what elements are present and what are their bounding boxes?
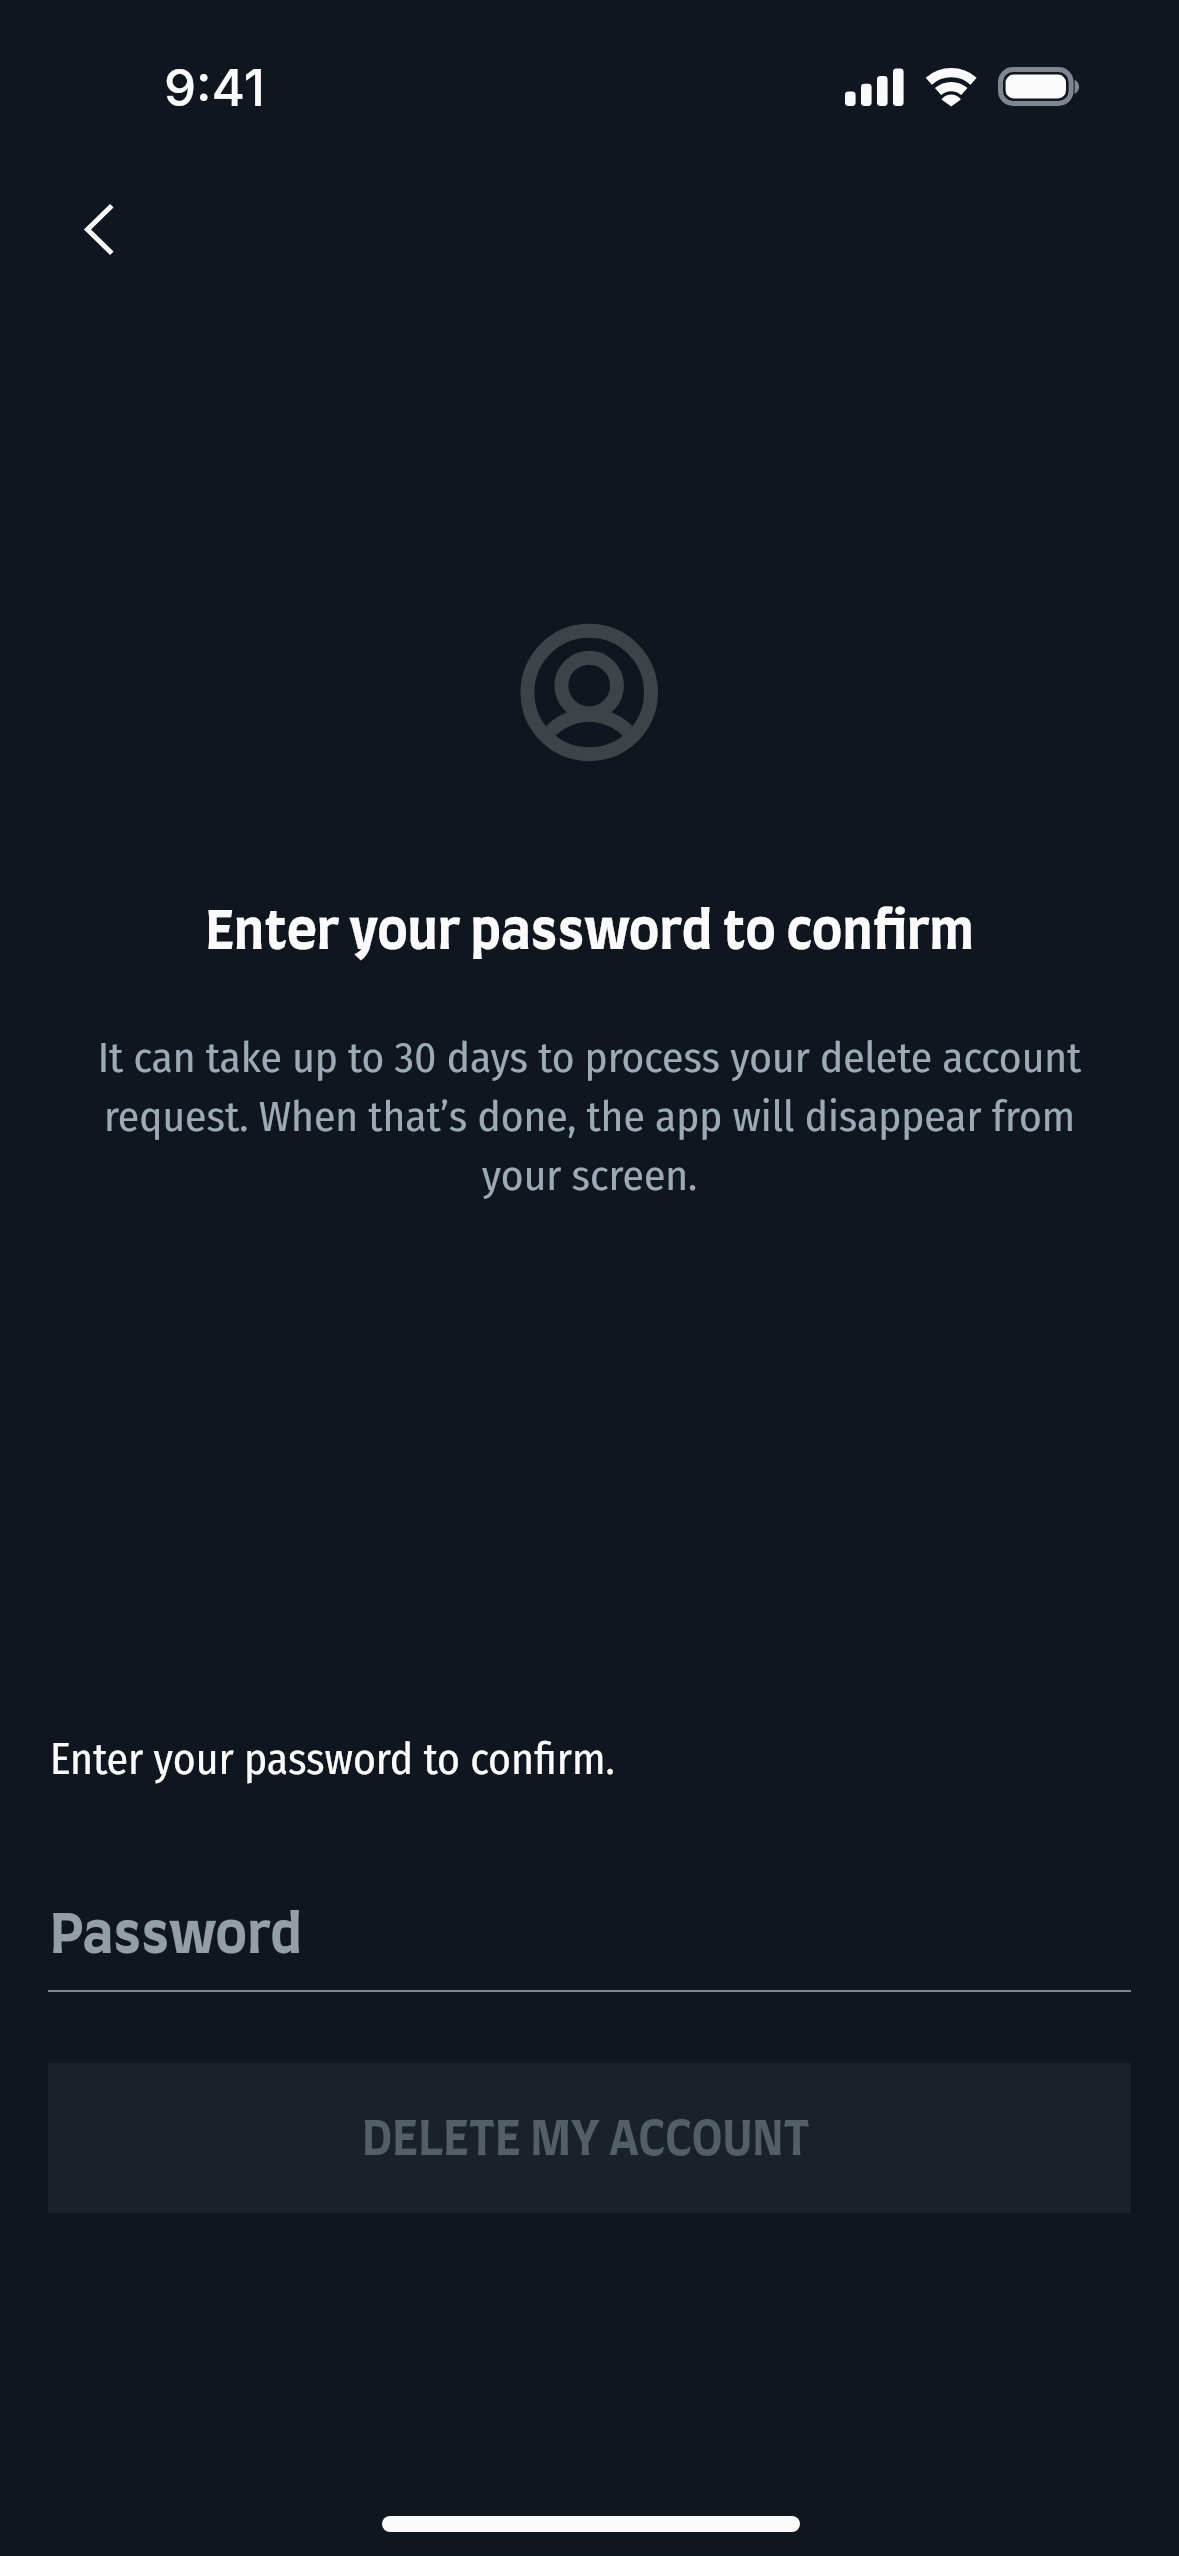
staticText: 9:41 bbox=[164, 57, 265, 119]
staticText: Password bbox=[50, 1910, 302, 1964]
staticText: Enter your password to confirm. bbox=[50, 1733, 615, 1785]
staticText: Enter your password to confirm bbox=[0, 908, 1179, 960]
button[interactable]: Back bbox=[46, 176, 152, 282]
button[interactable]: DELETE MY ACCOUNT bbox=[48, 2063, 1131, 2213]
staticText: It can take up to 30 days to process you… bbox=[88, 1032, 1091, 1201]
staticText: DELETE MY ACCOUNT bbox=[362, 2118, 810, 2165]
